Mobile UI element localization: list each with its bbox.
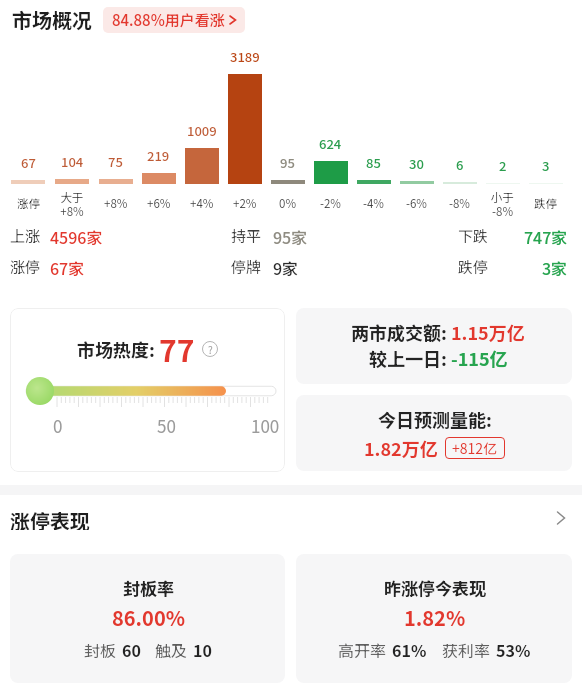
staticText: 3	[542, 156, 550, 175]
staticText: 3家	[542, 256, 568, 277]
staticText: 大于 +8%	[60, 189, 84, 217]
staticText: 小于 -8%	[491, 189, 514, 217]
button[interactable]: 涨停表现	[0, 506, 582, 530]
staticText: 触及	[155, 638, 188, 661]
staticText: +8%	[104, 195, 128, 212]
staticText: 60	[122, 638, 141, 661]
staticText: 77	[159, 327, 195, 370]
staticText: 0%	[279, 195, 296, 212]
staticText: -4%	[363, 195, 384, 212]
staticText: 1009	[187, 121, 217, 140]
staticText: 较上一日:	[369, 345, 447, 371]
staticText: 9家	[273, 256, 299, 277]
staticText: 涨停表现	[10, 506, 90, 530]
staticText: +812亿	[452, 438, 498, 458]
staticText: 跌停	[534, 195, 557, 212]
staticText: -115亿	[451, 345, 508, 371]
staticText: 100	[251, 413, 280, 438]
staticText: -8%	[449, 195, 470, 212]
staticText: 停牌	[231, 256, 262, 277]
staticText: 封板	[84, 638, 117, 661]
staticText: 上涨	[10, 225, 41, 246]
staticText: 两市成交额:	[351, 319, 447, 345]
staticText: 下跌	[458, 225, 489, 246]
staticText: 95	[280, 153, 295, 172]
staticText: 10	[193, 638, 212, 661]
staticText: 3189	[230, 47, 260, 66]
staticText: 1.82%	[404, 603, 466, 632]
staticText: 53%	[496, 638, 531, 661]
staticText: 获利率	[442, 638, 491, 661]
staticText: 95家	[273, 225, 308, 246]
staticText: 67	[21, 153, 36, 172]
staticText: 624	[319, 134, 342, 153]
staticText: 1.82万亿	[364, 435, 438, 461]
staticText: 涨停	[10, 256, 41, 277]
staticText: 2	[499, 156, 507, 175]
staticText: 4596家	[50, 225, 103, 246]
staticText: +6%	[147, 195, 171, 212]
staticText: ?	[208, 342, 213, 356]
button[interactable]: 两市成交额:	[296, 308, 572, 384]
staticText: 跌停	[458, 256, 489, 277]
staticText: 高开率	[338, 638, 387, 661]
staticText: 昨涨停今表现	[384, 575, 486, 600]
staticText: 封板率	[123, 575, 174, 600]
button[interactable]: 84.88%用户看涨	[103, 7, 245, 33]
staticText: 85	[366, 153, 381, 172]
staticText: 67家	[50, 256, 85, 277]
staticText: 50	[157, 413, 176, 438]
staticText: 219	[147, 146, 170, 165]
staticText: 持平	[231, 225, 262, 246]
staticText: 61%	[392, 638, 427, 661]
staticText: +4%	[190, 195, 214, 212]
button[interactable]: 封板率	[10, 554, 285, 683]
staticText: -6%	[406, 195, 427, 212]
staticText: 涨停	[17, 195, 40, 212]
button[interactable]: 市场热度:	[10, 308, 285, 472]
staticText: 市场热度:	[77, 336, 155, 362]
staticText: 104	[61, 152, 84, 171]
staticText: 86.00%	[112, 603, 185, 632]
staticText: 0	[53, 413, 63, 438]
staticText: 30	[409, 154, 424, 173]
staticText: 6	[456, 155, 464, 174]
staticText: -2%	[320, 195, 341, 212]
staticText: 84.88%用户看涨	[112, 9, 225, 31]
button[interactable]: 今日预测量能:	[296, 395, 572, 471]
staticText: 75	[108, 152, 123, 171]
staticText: 市场概况	[12, 5, 92, 34]
staticText: 1.15万亿	[451, 319, 525, 345]
staticText: 今日预测量能:	[378, 406, 492, 432]
staticText: +2%	[233, 195, 257, 212]
staticText: 747家	[524, 225, 568, 246]
button[interactable]: 昨涨停今表现	[296, 554, 572, 683]
